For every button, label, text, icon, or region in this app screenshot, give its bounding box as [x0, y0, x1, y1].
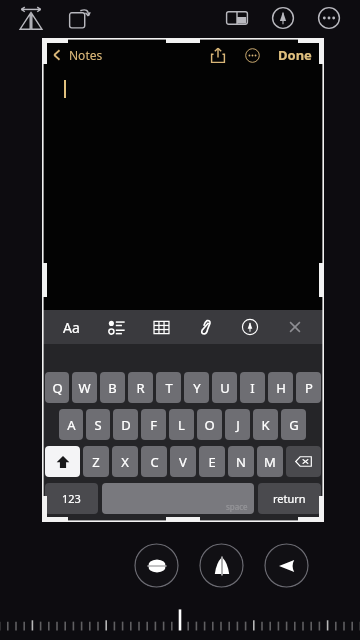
staticText: I — [250, 379, 255, 397]
button[interactable]: More — [238, 41, 266, 69]
button[interactable]: Markup — [266, 1, 300, 35]
button[interactable]: R — [128, 372, 153, 403]
button[interactable]: K — [253, 409, 278, 440]
button[interactable]: X — [112, 446, 138, 477]
button[interactable]: C — [141, 446, 167, 477]
button[interactable]: Table — [145, 311, 177, 343]
staticText: Y — [193, 379, 201, 397]
staticText: G — [289, 416, 299, 434]
button[interactable]: 123 — [45, 483, 98, 514]
button[interactable]: L — [169, 409, 194, 440]
staticText: Done — [278, 46, 312, 64]
button[interactable]: H — [268, 372, 293, 403]
button[interactable]: Backspace — [286, 446, 321, 477]
button[interactable]: Space — [102, 483, 254, 514]
button[interactable]: Share — [204, 41, 232, 69]
button[interactable]: S — [86, 409, 110, 440]
button[interactable]: Checklist — [100, 311, 132, 343]
staticText: K — [261, 416, 270, 434]
button[interactable]: N — [228, 446, 254, 477]
staticText: R — [136, 379, 145, 397]
button[interactable]: O — [197, 409, 222, 440]
staticText: X — [121, 453, 129, 471]
button[interactable]: A — [59, 409, 83, 440]
staticText: O — [204, 416, 215, 434]
staticText: Aa — [63, 318, 80, 337]
button[interactable]: return — [258, 483, 321, 514]
button[interactable]: Q — [45, 372, 69, 403]
button[interactable]: Close keyboard — [279, 311, 311, 343]
button[interactable]: P — [296, 372, 321, 403]
staticText: A — [67, 416, 76, 434]
button[interactable]: V — [170, 446, 196, 477]
button[interactable]: Z — [83, 446, 109, 477]
staticText: M — [264, 453, 276, 471]
staticText: D — [121, 416, 131, 434]
staticText: N — [236, 453, 246, 471]
staticText: L — [178, 416, 185, 434]
staticText: Q — [52, 379, 63, 397]
button[interactable]: E — [199, 446, 225, 477]
button[interactable]: G — [281, 409, 306, 440]
staticText: 123 — [62, 491, 81, 506]
button[interactable]: Markup — [234, 311, 266, 343]
button[interactable]: Done — [272, 46, 318, 64]
staticText: Z — [92, 453, 100, 471]
button[interactable]: Y — [184, 372, 209, 403]
button[interactable]: F — [141, 409, 166, 440]
staticText: E — [208, 453, 216, 471]
button[interactable]: Flip horizontally — [14, 1, 48, 35]
button[interactable]: Rotate — [62, 1, 96, 35]
staticText: P — [305, 379, 313, 397]
button[interactable]: T — [156, 372, 181, 403]
staticText: F — [150, 416, 157, 434]
staticText: C — [150, 453, 159, 471]
staticText: space — [226, 501, 248, 512]
button[interactable]: D — [113, 409, 138, 440]
staticText: V — [179, 453, 187, 471]
button[interactable]: J — [225, 409, 250, 440]
button[interactable]: Text format — [55, 311, 87, 343]
button[interactable]: I — [240, 372, 265, 403]
staticText: B — [108, 379, 117, 397]
staticText: W — [78, 379, 91, 397]
button[interactable]: U — [212, 372, 237, 403]
button[interactable]: Split view — [220, 1, 254, 35]
button[interactable]: Flip vertical — [199, 543, 244, 588]
staticText: U — [220, 379, 230, 397]
button[interactable]: M — [257, 446, 283, 477]
staticText: S — [94, 416, 102, 434]
button[interactable]: W — [72, 372, 97, 403]
staticText: J — [236, 416, 240, 434]
button[interactable]: More options — [312, 1, 346, 35]
button[interactable]: Attach — [189, 311, 221, 343]
staticText: Notes — [69, 47, 103, 63]
staticText: T — [165, 379, 173, 397]
button[interactable]: Flip arrow — [264, 543, 309, 588]
button[interactable]: Shift — [45, 446, 80, 477]
staticText: return — [273, 491, 306, 506]
staticText: H — [276, 379, 286, 397]
button[interactable]: Notes — [42, 47, 109, 63]
button[interactable]: B — [100, 372, 125, 403]
button[interactable]: Flip horizontal — [134, 543, 179, 588]
